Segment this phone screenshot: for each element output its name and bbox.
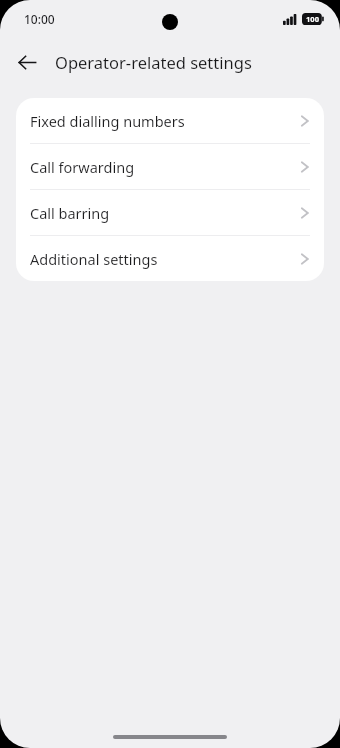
staticText: Call forwarding: [30, 157, 300, 177]
button[interactable]: Additional settings: [16, 236, 324, 281]
button[interactable]: Fixed dialling numbers: [16, 98, 324, 143]
button[interactable]: Call forwarding: [16, 144, 324, 189]
staticText: Additional settings: [30, 249, 300, 269]
button[interactable]: Back: [10, 45, 44, 79]
button[interactable]: Call barring: [16, 190, 324, 235]
staticText: 100: [306, 14, 319, 24]
staticText: Fixed dialling numbers: [30, 111, 300, 131]
staticText: Call barring: [30, 203, 300, 223]
staticText: Operator-related settings: [55, 51, 252, 73]
staticText: 10:00: [24, 11, 55, 27]
